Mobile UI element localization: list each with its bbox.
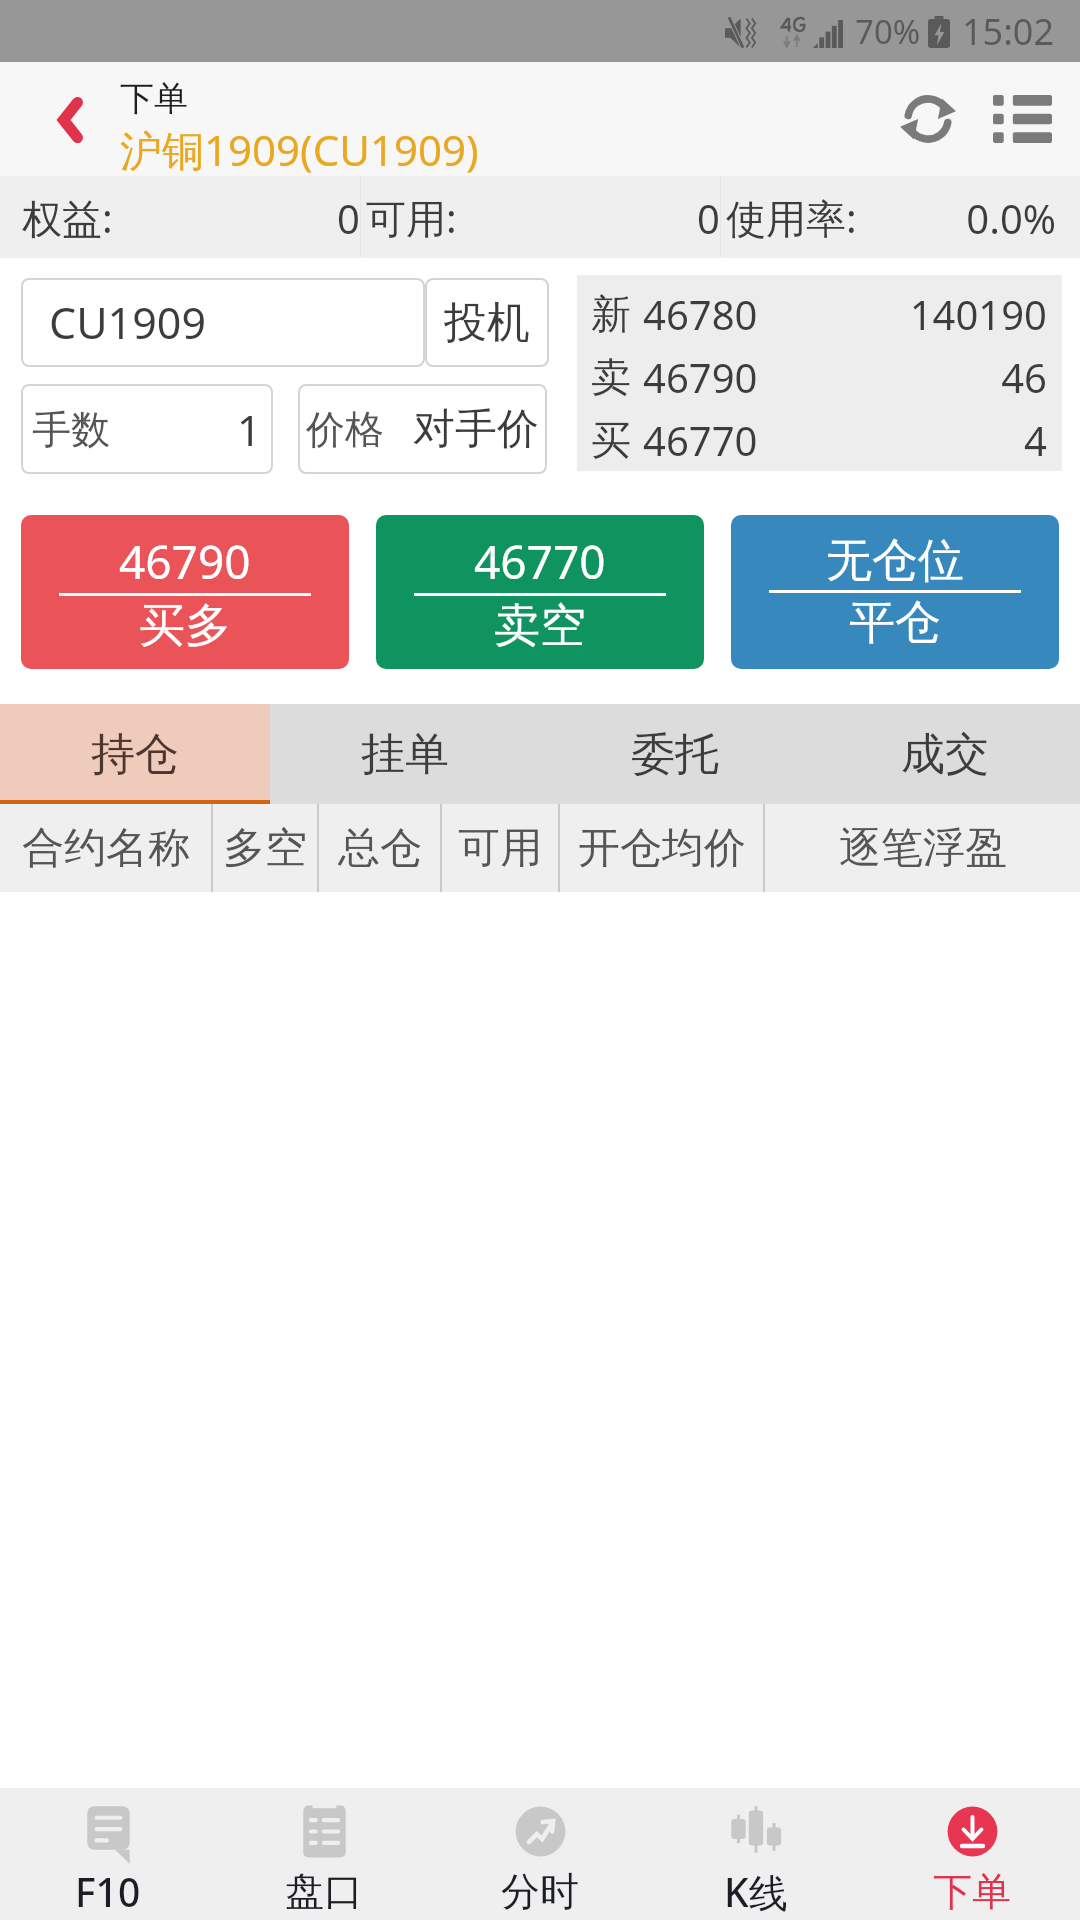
staticText: 沪铜1909(CU1909) — [120, 121, 479, 178]
staticText: 盘口 — [285, 1867, 363, 1916]
staticText: 46790 — [643, 350, 758, 404]
staticText: 70% — [855, 9, 921, 54]
staticText: 0.0% — [857, 191, 1056, 245]
button[interactable]: 无仓位 — [731, 515, 1059, 669]
button[interactable]: 下单 — [864, 1788, 1080, 1920]
staticText: 买 — [591, 415, 631, 465]
button[interactable]: 持仓 — [0, 704, 270, 804]
staticText: 46770 — [474, 530, 606, 593]
staticText: 46 — [758, 350, 1047, 404]
staticText: 委托 — [631, 727, 719, 782]
staticText: 开仓均价 — [578, 822, 746, 875]
button[interactable]: 成交 — [810, 704, 1080, 804]
staticText: 权益: — [22, 190, 113, 245]
button[interactable]: 挂单 — [270, 704, 540, 804]
staticText: 使用率: — [726, 190, 857, 245]
staticText: 可用: — [366, 190, 457, 245]
button[interactable]: Back — [0, 62, 120, 176]
button[interactable]: 委托 — [540, 704, 810, 804]
staticText: 下单 — [933, 1867, 1011, 1916]
staticText: 平仓 — [849, 594, 941, 652]
staticText: 持仓 — [91, 727, 179, 782]
staticText: 140190 — [758, 287, 1047, 341]
staticText: 46780 — [643, 287, 758, 341]
staticText: 46770 — [643, 413, 758, 467]
staticText: 逐笔浮盈 — [839, 822, 1007, 875]
button[interactable]: Refresh — [848, 62, 964, 176]
staticText: 价格 — [306, 405, 384, 454]
button[interactable]: K线 — [648, 1788, 864, 1920]
button[interactable]: 价格 — [298, 384, 547, 474]
staticText: 1 — [237, 401, 262, 458]
staticText: 卖空 — [494, 597, 586, 655]
staticText: 46790 — [119, 530, 251, 593]
button[interactable]: 分时 — [432, 1788, 648, 1920]
button[interactable]: CU1909 — [21, 278, 425, 367]
button[interactable]: 手数 — [21, 384, 273, 474]
staticText: 卖 — [591, 352, 631, 402]
button[interactable]: 投机 — [425, 278, 549, 367]
staticText: 下单 — [120, 77, 188, 120]
staticText: K线 — [724, 1865, 788, 1918]
staticText: 4 — [758, 413, 1047, 467]
button[interactable]: 盘口 — [216, 1788, 432, 1920]
staticText: 总仓 — [338, 822, 422, 875]
staticText: 新 — [591, 289, 631, 339]
button[interactable]: F10 — [0, 1788, 216, 1920]
staticText: 0 — [113, 191, 360, 245]
staticText: 投机 — [444, 296, 530, 350]
button[interactable]: 46770 — [376, 515, 704, 669]
staticText: 多空 — [223, 822, 307, 875]
staticText: 手数 — [32, 405, 110, 454]
staticText: 无仓位 — [826, 532, 964, 590]
staticText: 买多 — [139, 597, 231, 655]
button[interactable]: 46790 — [21, 515, 349, 669]
staticText: 15:02 — [962, 7, 1055, 56]
staticText: F10 — [75, 1865, 141, 1918]
staticText: 0 — [457, 191, 720, 245]
staticText: 可用 — [458, 822, 542, 875]
staticText: 合约名称 — [22, 822, 190, 875]
staticText: 分时 — [501, 1867, 579, 1916]
button[interactable]: Order list — [964, 62, 1080, 176]
staticText: 成交 — [901, 727, 989, 782]
staticText: 挂单 — [361, 727, 449, 782]
staticText: 对手价 — [413, 403, 539, 456]
staticText: CU1909 — [49, 293, 206, 352]
button[interactable]: 新 — [577, 275, 1062, 471]
